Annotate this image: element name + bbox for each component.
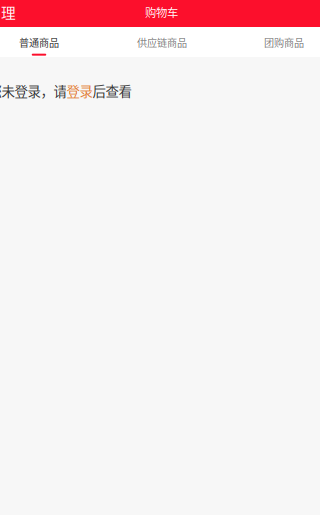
staticText: 购物车 [145, 4, 178, 20]
button[interactable]: 管理 [1, 0, 27, 26]
button[interactable]: 团购商品 [239, 27, 320, 57]
staticText: 登录 [66, 81, 92, 100]
staticText: 供应链商品 [137, 35, 187, 50]
staticText: 后查看 [92, 81, 131, 100]
staticText: 团购商品 [264, 35, 304, 50]
staticText: 普通商品 [19, 35, 59, 50]
staticText: 理 [1, 2, 16, 23]
button[interactable]: 供应链商品 [117, 27, 207, 57]
button[interactable]: 普通商品 [0, 27, 84, 57]
staticText: 您未登录，请 [0, 81, 66, 100]
button[interactable]: 登录 [66, 81, 92, 100]
